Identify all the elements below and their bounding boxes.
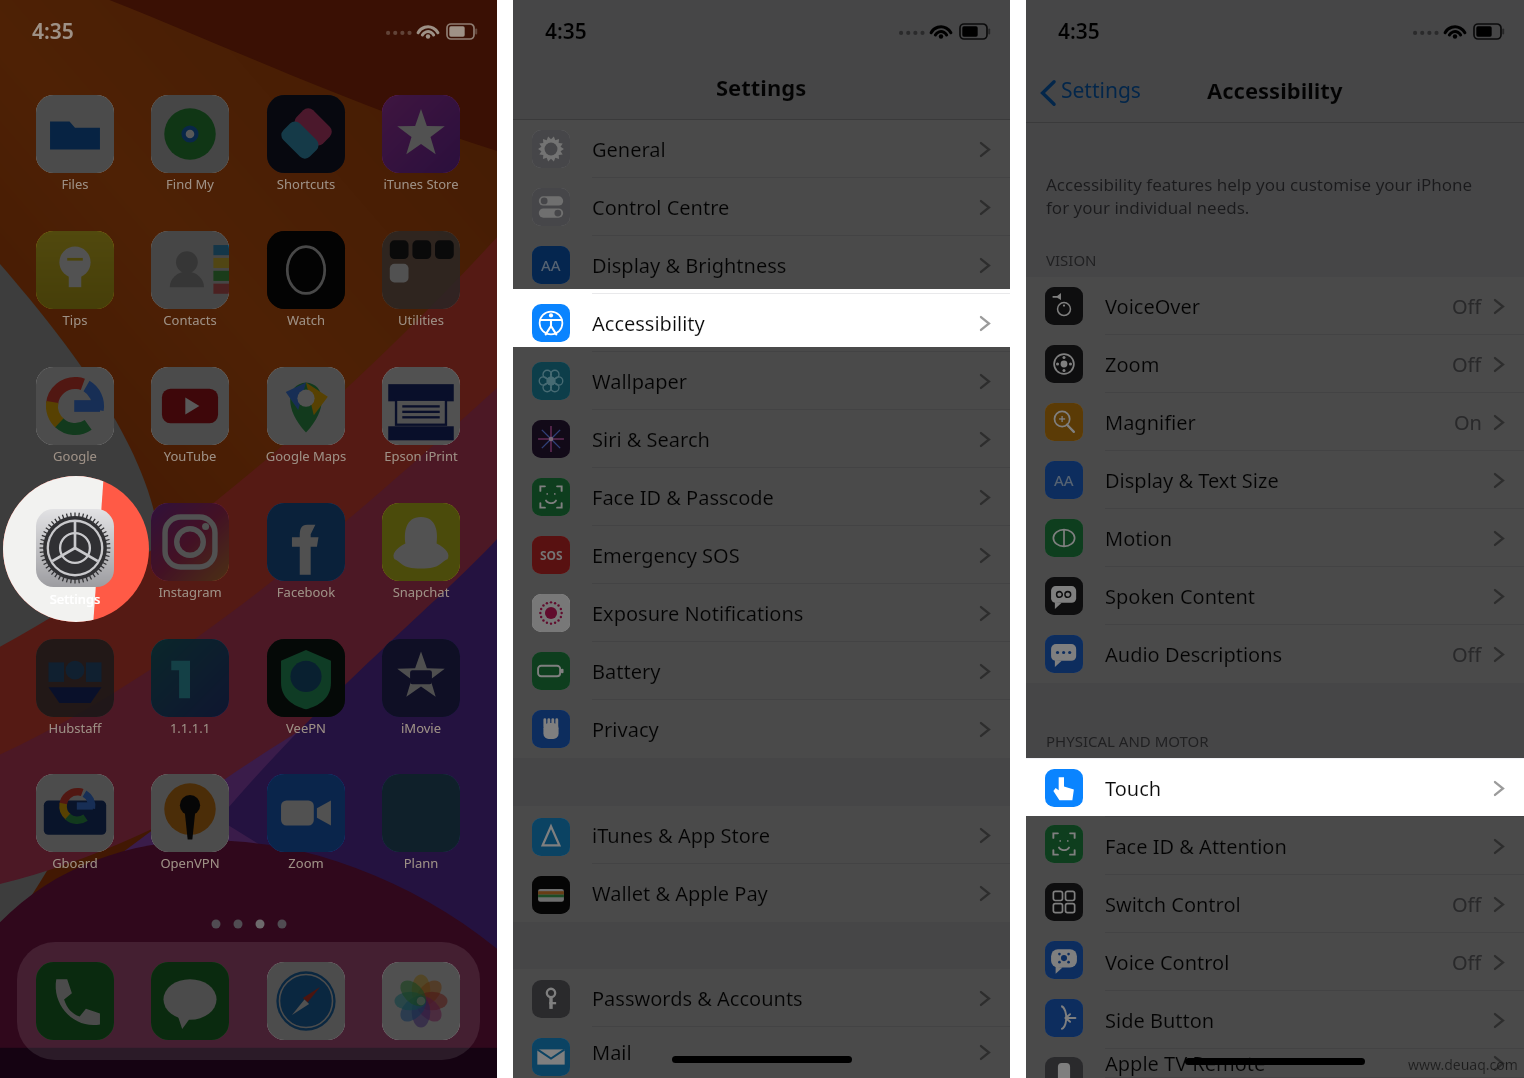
button[interactable]: Audio Descriptions xyxy=(1026,625,1524,683)
button[interactable]: Utilities xyxy=(382,231,460,309)
button[interactable]: Google Maps xyxy=(267,367,345,445)
button[interactable]: Face ID & Passcode xyxy=(513,468,1010,526)
staticText: VISION xyxy=(1046,250,1097,270)
button[interactable]: Facebook xyxy=(267,503,345,581)
staticText: Motion xyxy=(1105,525,1173,552)
staticText: 4:35 xyxy=(545,17,587,46)
staticText: Touch xyxy=(1105,775,1162,802)
staticText: Off xyxy=(1452,351,1482,378)
staticText: Accessibility xyxy=(1207,75,1343,105)
staticText: Privacy xyxy=(592,716,659,743)
button[interactable]: Control Centre xyxy=(513,178,1010,236)
button[interactable]: iTunes & App Store xyxy=(513,806,1010,864)
button[interactable]: Back to Settings xyxy=(1040,78,1141,107)
button[interactable]: Settings app xyxy=(36,509,114,587)
button[interactable]: Spoken Content xyxy=(1026,567,1524,625)
button[interactable]: Display & Brightness xyxy=(513,236,1010,294)
button[interactable]: Zoom xyxy=(1026,335,1524,393)
button[interactable]: Magnifier xyxy=(1026,393,1524,451)
staticText: Audio Descriptions xyxy=(1105,641,1283,668)
button[interactable]: Files xyxy=(36,95,114,173)
button[interactable]: VeePN xyxy=(267,639,345,717)
button[interactable]: Siri & Search xyxy=(513,410,1010,468)
button[interactable]: Exposure Notifications xyxy=(513,584,1010,642)
button[interactable]: iMovie xyxy=(382,639,460,717)
staticText: PHYSICAL AND MOTOR xyxy=(1046,731,1209,751)
button[interactable]: Voice Control xyxy=(1026,933,1524,991)
button[interactable]: Google xyxy=(36,367,114,445)
staticText: Google xyxy=(18,447,132,465)
staticText: Tips xyxy=(18,311,132,329)
button[interactable]: Epson iPrint xyxy=(382,367,460,445)
button[interactable]: 1.1.1.1 xyxy=(151,639,229,717)
staticText: Shortcuts xyxy=(249,175,363,193)
button[interactable]: Messages xyxy=(151,962,229,1040)
button[interactable]: Safari xyxy=(267,962,345,1040)
button[interactable]: Shortcuts xyxy=(267,95,345,173)
staticText: 4:35 xyxy=(1058,17,1100,46)
staticText: Emergency SOS xyxy=(592,542,740,569)
button[interactable]: Photos xyxy=(382,962,460,1040)
staticText: Files xyxy=(18,175,132,193)
button[interactable]: Motion xyxy=(1026,509,1524,567)
staticText: VoiceOver xyxy=(1105,293,1201,320)
staticText: Control Centre xyxy=(592,194,730,221)
button[interactable]: Contacts xyxy=(151,231,229,309)
button[interactable]: Wallet & Apple Pay xyxy=(513,864,1010,922)
button[interactable]: YouTube xyxy=(151,367,229,445)
button[interactable]: OpenVPN xyxy=(151,774,229,852)
button[interactable]: Wallpaper xyxy=(513,352,1010,410)
button[interactable]: Instagram xyxy=(151,503,229,581)
button[interactable]: Touch xyxy=(1026,759,1524,817)
staticText: Off xyxy=(1452,641,1482,668)
button[interactable]: Mail xyxy=(513,1027,1010,1078)
staticText: Zoom xyxy=(249,854,363,872)
staticText: Watch xyxy=(249,311,363,329)
staticText: Settings xyxy=(716,72,807,102)
staticText: Display & Brightness xyxy=(592,252,787,279)
staticText: Settings xyxy=(18,590,132,608)
button[interactable]: Face ID & Attention xyxy=(1026,817,1524,875)
button[interactable]: Plann xyxy=(382,774,460,852)
staticText: 4:35 xyxy=(32,17,74,46)
button[interactable]: Privacy xyxy=(513,700,1010,758)
staticText: OpenVPN xyxy=(133,854,247,872)
button[interactable]: Tips xyxy=(36,231,114,309)
staticText: YouTube xyxy=(133,447,247,465)
button[interactable]: Gboard xyxy=(36,774,114,852)
button[interactable]: Passwords & Accounts xyxy=(513,969,1010,1027)
button[interactable]: Apple TV Remote xyxy=(1026,1049,1524,1078)
button[interactable]: iTunes Store xyxy=(382,95,460,173)
button[interactable]: Find My xyxy=(151,95,229,173)
button[interactable]: Battery xyxy=(513,642,1010,700)
staticText: Voice Control xyxy=(1105,949,1230,976)
staticText: Face ID & Passcode xyxy=(592,484,774,511)
button[interactable]: Settings xyxy=(36,503,114,581)
button[interactable]: Side Button xyxy=(1026,991,1524,1049)
staticText: Off xyxy=(1452,293,1482,320)
staticText: Gboard xyxy=(18,854,132,872)
staticText: Accessibility features help you customis… xyxy=(1046,173,1473,219)
button[interactable]: Hubstaff xyxy=(36,639,114,717)
button[interactable]: Switch Control xyxy=(1026,875,1524,933)
staticText: Utilities xyxy=(364,311,478,329)
staticText: VeePN xyxy=(249,719,363,737)
staticText: Snapchat xyxy=(364,583,478,601)
button[interactable]: General xyxy=(513,120,1010,178)
button[interactable]: Emergency SOS xyxy=(513,526,1010,584)
button[interactable]: Phone xyxy=(36,962,114,1040)
button[interactable]: Watch xyxy=(267,231,345,309)
staticText: On xyxy=(1454,409,1482,436)
staticText: Display & Text Size xyxy=(1105,467,1279,494)
button[interactable]: Zoom xyxy=(267,774,345,852)
button[interactable]: VoiceOver xyxy=(1026,277,1524,335)
staticText: Off xyxy=(1452,949,1482,976)
staticText: Contacts xyxy=(133,311,247,329)
button[interactable]: Accessibility xyxy=(513,294,1010,352)
staticText: Off xyxy=(1452,891,1482,918)
staticText: Switch Control xyxy=(1105,891,1241,918)
button[interactable]: Display & Text Size xyxy=(1026,451,1524,509)
staticText: Plann xyxy=(364,854,478,872)
staticText: 1.1.1.1 xyxy=(133,719,247,737)
button[interactable]: Snapchat xyxy=(382,503,460,581)
